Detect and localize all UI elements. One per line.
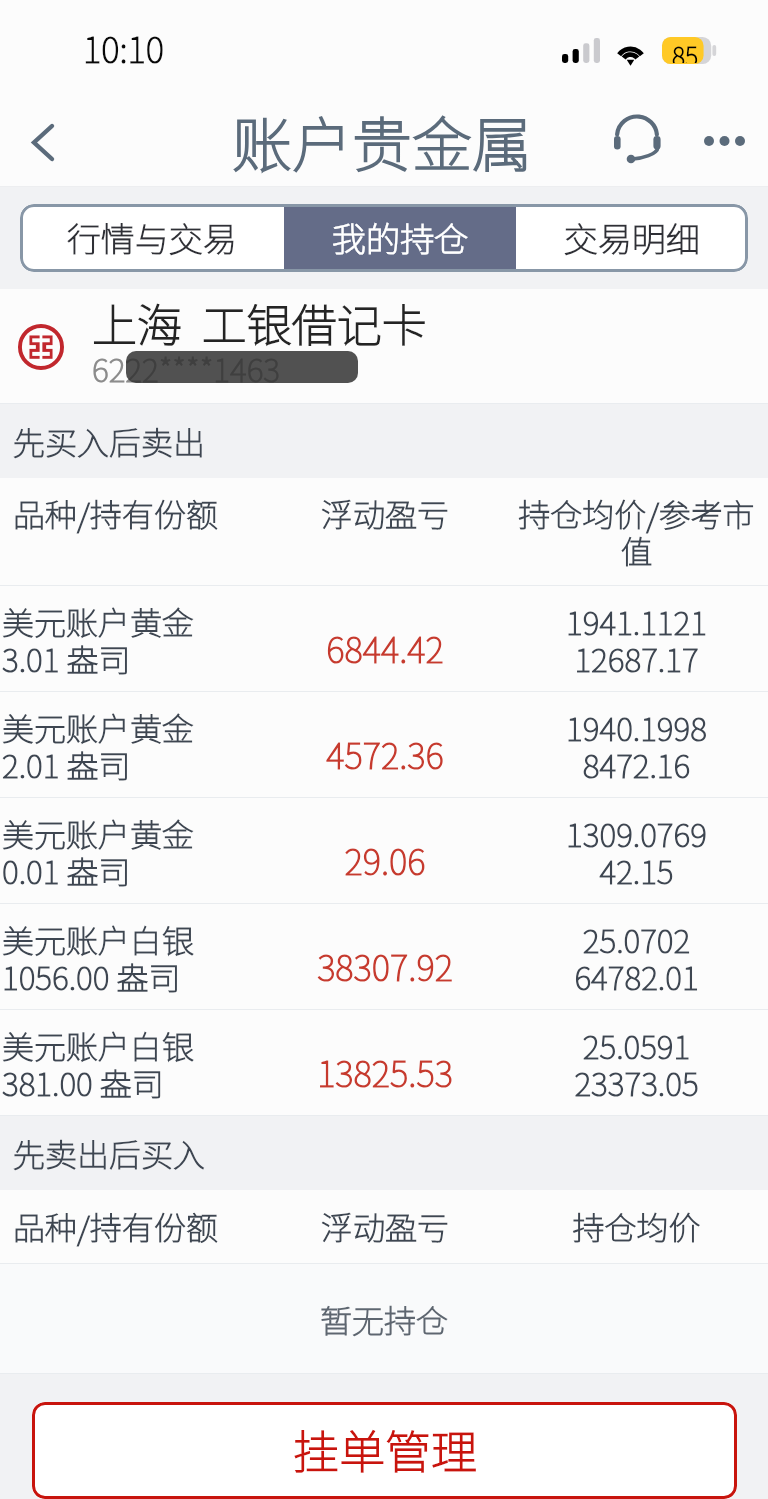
button[interactable]: 美元账户黄金 0.01 盎司: [0, 798, 768, 904]
staticText: 浮动盈亏: [265, 1203, 505, 1249]
staticText: 行情与交易: [67, 213, 237, 262]
staticText: 先买入后卖出: [13, 418, 206, 464]
staticText: 先卖出后买入: [13, 1130, 206, 1176]
staticText: 10:10: [83, 22, 165, 73]
staticText: 美元账户白银 1056.00 盎司: [2, 916, 265, 999]
button[interactable]: 挂单管理: [32, 1402, 737, 1499]
staticText: 持仓均价/参考市值: [505, 490, 768, 573]
button[interactable]: 交易明细: [516, 204, 748, 272]
staticText: 38307.92: [265, 940, 505, 991]
staticText: 浮动盈亏: [265, 490, 505, 536]
staticText: 13825.53: [265, 1046, 505, 1097]
staticText: 账户贵金属: [232, 97, 532, 184]
staticText: 美元账户黄金 2.01 盎司: [2, 704, 265, 787]
staticText: 上海 工银借记卡: [92, 290, 427, 355]
staticText: 挂单管理: [293, 1416, 477, 1483]
button[interactable]: 行情与交易: [20, 204, 284, 272]
staticText: 29.06: [265, 834, 505, 885]
staticText: 品种/持有份额: [13, 1203, 265, 1249]
staticText: 6222****1463: [92, 345, 281, 391]
staticText: 美元账户黄金 3.01 盎司: [2, 598, 265, 681]
staticText: 1940.1998 8472.16: [505, 704, 768, 787]
button[interactable]: 上海 工银借记卡: [0, 289, 768, 404]
staticText: 6844.42: [265, 622, 505, 673]
staticText: 交易明细: [564, 213, 700, 262]
staticText: 4572.36: [265, 728, 505, 779]
staticText: 持仓均价: [505, 1203, 768, 1249]
staticText: 暂无持仓: [320, 1296, 449, 1342]
staticText: 1941.1121 12687.17: [505, 598, 768, 681]
staticText: 25.0591 23373.05: [505, 1022, 768, 1105]
staticText: 美元账户白银 381.00 盎司: [2, 1022, 265, 1105]
button[interactable]: 美元账户白银 381.00 盎司: [0, 1010, 768, 1116]
button[interactable]: More options: [693, 110, 755, 172]
staticText: 1309.0769 42.15: [505, 810, 768, 893]
staticText: 我的持仓: [332, 213, 468, 262]
button[interactable]: 美元账户白银 1056.00 盎司: [0, 904, 768, 1010]
button[interactable]: 美元账户黄金 2.01 盎司: [0, 692, 768, 798]
button[interactable]: Customer service: [606, 109, 668, 171]
staticText: 品种/持有份额: [13, 490, 265, 536]
staticText: 85: [672, 37, 699, 63]
button[interactable]: 我的持仓: [284, 204, 516, 272]
staticText: 美元账户黄金 0.01 盎司: [2, 810, 265, 893]
button[interactable]: Back: [10, 109, 76, 175]
button[interactable]: 美元账户黄金 3.01 盎司: [0, 586, 768, 692]
staticText: 25.0702 64782.01: [505, 916, 768, 999]
